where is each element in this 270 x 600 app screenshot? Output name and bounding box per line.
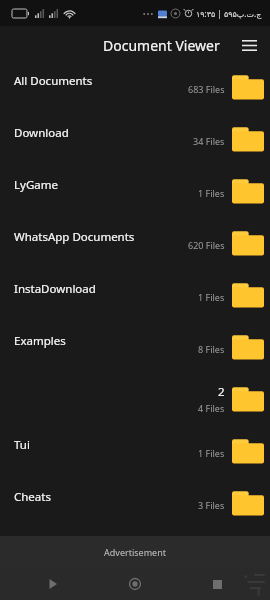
staticText: Download <box>14 125 184 141</box>
button[interactable]: Recents <box>204 571 230 597</box>
button[interactable]: Back <box>40 571 66 597</box>
staticText: 2 <box>218 384 225 400</box>
staticText: All Documents <box>14 73 184 89</box>
staticText: 1 Files <box>198 447 225 459</box>
staticText: 34 Files <box>193 135 225 147</box>
button[interactable]: Download <box>0 116 270 168</box>
staticText: Advertisement <box>104 546 166 558</box>
button[interactable]: Home <box>122 571 148 597</box>
button[interactable]: Tui <box>0 428 270 480</box>
staticText: 1 Files <box>198 187 225 199</box>
staticText: Tui <box>14 437 184 453</box>
staticText: ج.ت.پ‌۵۹۵ | ۱۹:۳۵ <box>196 8 262 19</box>
staticText: Examples <box>14 333 184 349</box>
button[interactable]: WhatsApp Documents <box>0 220 270 272</box>
button[interactable]: Menu <box>234 30 264 60</box>
staticText: 8 Files <box>198 343 225 355</box>
button[interactable]: 2 <box>0 376 270 428</box>
staticText: 4 Files <box>198 402 225 414</box>
button[interactable]: LyGame <box>0 168 270 220</box>
button[interactable]: Advertisement <box>0 536 270 568</box>
staticText: Document Viewer <box>103 36 220 55</box>
button[interactable]: Examples <box>0 324 270 376</box>
staticText: 1 Files <box>198 291 225 303</box>
staticText: 3 Files <box>198 499 225 511</box>
staticText: LyGame <box>14 177 184 193</box>
button[interactable]: Cheats <box>0 480 270 532</box>
staticText: WhatsApp Documents <box>14 229 184 245</box>
staticText: 620 Files <box>188 239 225 251</box>
button[interactable]: InstaDownload <box>0 272 270 324</box>
button[interactable]: All Documents <box>0 64 270 116</box>
staticText: Cheats <box>14 489 184 505</box>
staticText: 683 Files <box>188 83 225 95</box>
staticText: InstaDownload <box>14 281 184 297</box>
